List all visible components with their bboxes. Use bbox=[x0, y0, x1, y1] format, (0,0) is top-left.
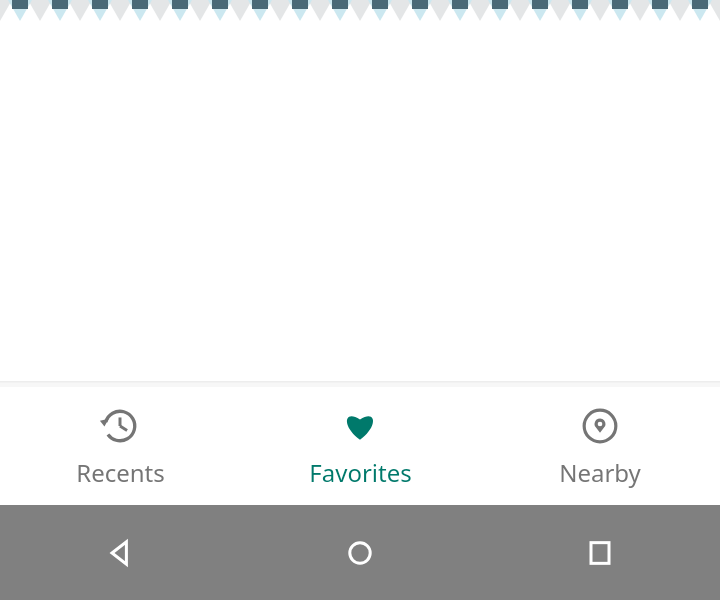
button[interactable]: Recents bbox=[0, 387, 240, 505]
staticText: Favorites bbox=[309, 456, 412, 489]
button[interactable]: Home bbox=[240, 505, 480, 600]
button[interactable]: Favorites bbox=[240, 387, 480, 505]
staticText: Recents bbox=[76, 456, 165, 489]
button[interactable]: Back bbox=[0, 505, 240, 600]
staticText: Nearby bbox=[559, 456, 641, 489]
button[interactable]: Nearby bbox=[480, 387, 720, 505]
button[interactable]: Recent apps bbox=[480, 505, 720, 600]
